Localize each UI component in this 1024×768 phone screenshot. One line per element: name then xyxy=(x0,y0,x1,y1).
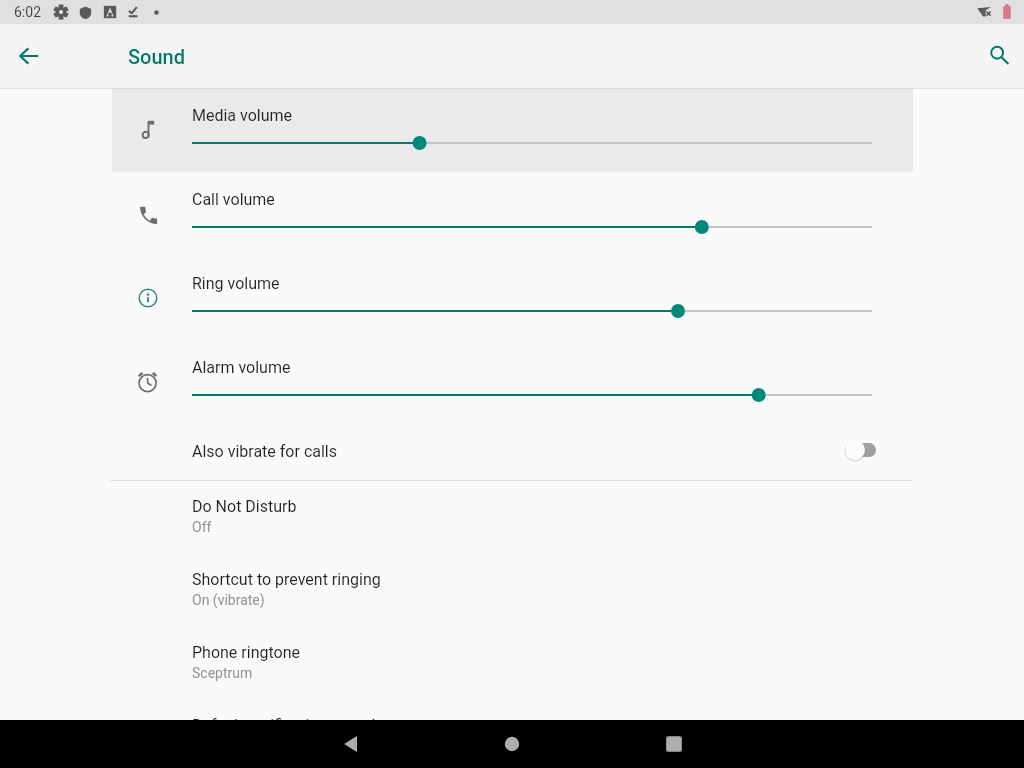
staticText: Alarm volume xyxy=(192,358,291,377)
button[interactable]: Call volume xyxy=(112,172,913,256)
button[interactable]: Do Not Disturb xyxy=(192,481,913,554)
button[interactable]: Home xyxy=(488,720,536,768)
button[interactable]: Phone ringtone xyxy=(192,627,913,700)
staticText: Media volume xyxy=(192,106,293,125)
button[interactable]: Navigate up xyxy=(8,36,48,76)
button[interactable]: Media volume xyxy=(112,88,913,172)
staticText: Call volume xyxy=(192,190,275,209)
button[interactable]: Also vibrate for calls xyxy=(192,424,913,480)
button[interactable]: Search xyxy=(978,36,1018,76)
button[interactable]: Ring volume xyxy=(112,256,913,340)
staticText: Do Not Disturb xyxy=(192,497,297,516)
button[interactable]: Shortcut to prevent ringing xyxy=(192,554,913,627)
staticText: Default notification sound xyxy=(192,716,376,735)
staticText: Sound xyxy=(128,45,186,68)
button[interactable]: Default notification sound xyxy=(192,700,913,720)
staticText: Ring volume xyxy=(192,274,280,293)
button[interactable]: Recents xyxy=(650,720,698,768)
staticText: Also vibrate for calls xyxy=(192,442,337,461)
staticText: Phone ringtone xyxy=(192,643,300,662)
staticText: 6:02 xyxy=(14,4,41,20)
staticText: Shortcut to prevent ringing xyxy=(192,570,381,589)
staticText: Sceptrum xyxy=(192,665,253,681)
button[interactable]: Alarm volume xyxy=(112,340,913,424)
staticText: On (vibrate) xyxy=(192,592,265,608)
button[interactable]: Back xyxy=(326,720,374,768)
staticText: Off xyxy=(192,519,212,535)
